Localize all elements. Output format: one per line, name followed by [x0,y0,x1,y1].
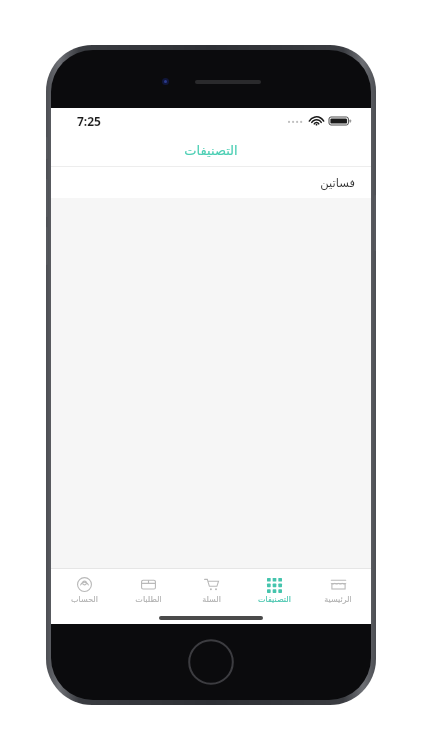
button[interactable]: فساتين [51,167,371,198]
other: الحساب [77,577,92,592]
staticText: السلة [202,595,221,604]
other: الطلبات [141,577,156,592]
other: الرئيسية [331,577,346,592]
staticText: فساتين [320,176,355,189]
staticText: الرئيسية [324,595,352,604]
staticText: التصنيفات [258,595,291,604]
other: السلة [204,577,219,592]
button[interactable]: الرئيسية [308,569,368,611]
staticText: التصنيفات [184,143,238,158]
staticText: الطلبات [135,595,162,604]
button[interactable]: الحساب [54,569,114,611]
button[interactable]: التصنيفات [244,569,304,611]
staticText: 7:25 [77,113,101,129]
button[interactable]: التصنيفات [51,134,371,166]
other: التصنيفات [267,577,282,592]
button[interactable]: الطلبات [118,569,178,611]
staticText: الحساب [71,595,98,604]
button[interactable]: السلة [181,569,241,611]
